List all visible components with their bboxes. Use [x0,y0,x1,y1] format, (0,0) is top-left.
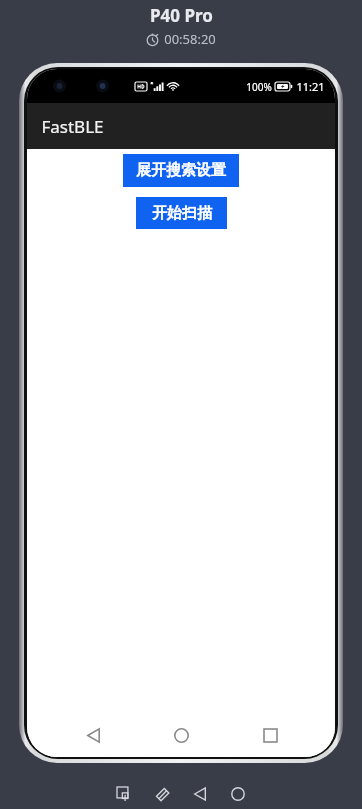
staticText: FastBLE [41,115,104,138]
button[interactable]: Back [188,782,212,806]
staticText: 100% [246,80,272,94]
staticText: 开始扫描 [152,204,212,223]
staticText: 11:21 [296,79,325,94]
button[interactable]: Home [226,782,250,806]
button[interactable]: Back [70,713,116,757]
button[interactable]: Screenshot [112,782,136,806]
button[interactable]: Recent apps [247,713,293,757]
button[interactable]: Rotate [150,782,174,806]
staticText: P40 Pro [150,4,213,27]
staticText: 00:58:20 [164,30,216,48]
staticText: 展开搜索设置 [136,161,226,180]
button[interactable]: 开始扫描 [136,197,227,229]
button[interactable]: 展开搜索设置 [123,154,239,187]
button[interactable]: Home [158,713,204,757]
